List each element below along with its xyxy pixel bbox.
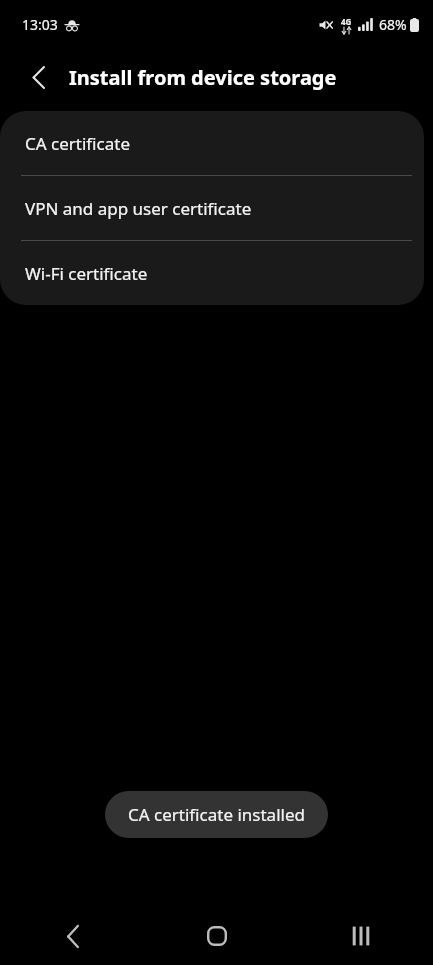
button[interactable]: VPN and app user certificate (0, 176, 424, 240)
staticText: 4G (341, 16, 352, 27)
button[interactable]: Wi-Fi certificate (0, 241, 424, 305)
staticText: Install from device storage (69, 64, 337, 91)
staticText: VPN and app user certificate (25, 197, 252, 220)
button[interactable]: Recent apps (289, 907, 433, 965)
staticText: CA certificate installed (128, 803, 305, 826)
staticText: 68% (379, 15, 407, 34)
button[interactable]: CA certificate (0, 111, 424, 175)
staticText: CA certificate (25, 132, 130, 155)
button[interactable]: Home (145, 907, 289, 965)
button[interactable]: Back (16, 55, 60, 99)
staticText: Wi-Fi certificate (25, 262, 148, 285)
staticText: 13:03 (22, 15, 58, 34)
button[interactable]: Back (0, 907, 145, 965)
